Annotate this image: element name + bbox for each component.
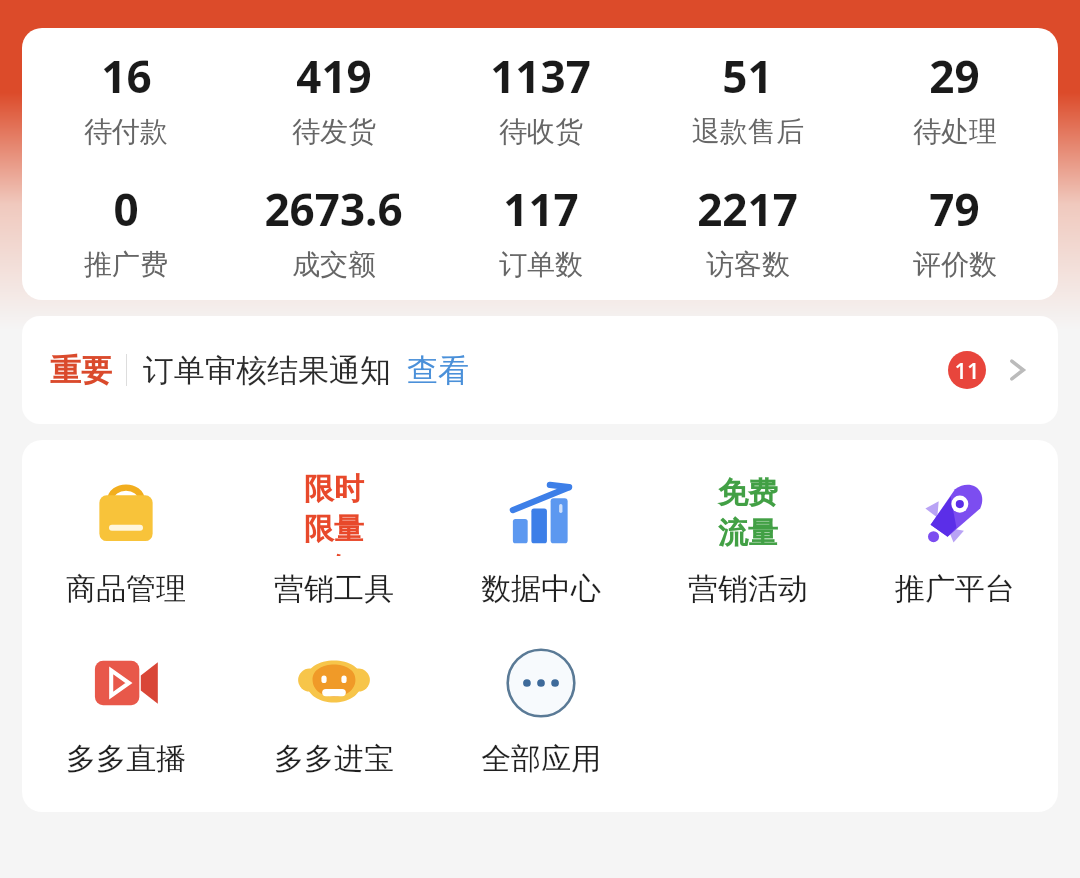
staticText: 419 bbox=[296, 46, 372, 106]
staticText: 限时 bbox=[304, 470, 364, 508]
staticText: 评价数 bbox=[913, 247, 997, 282]
staticText: 营销活动 bbox=[688, 570, 808, 608]
staticText: 查看 bbox=[407, 351, 469, 390]
staticText: 16 bbox=[101, 46, 152, 106]
staticText: 2673.6 bbox=[264, 179, 403, 239]
staticText: 数据中心 bbox=[481, 570, 601, 608]
button[interactable]: 16 bbox=[22, 46, 230, 149]
staticText: 重要 bbox=[50, 351, 112, 390]
staticText: 免费 bbox=[718, 474, 778, 512]
button[interactable]: 数据中心 bbox=[437, 470, 644, 608]
staticText: 待发货 bbox=[292, 114, 376, 149]
staticText: 11 bbox=[954, 355, 980, 385]
staticText: 117 bbox=[503, 179, 579, 239]
staticText: 退款售后 bbox=[692, 114, 804, 149]
button[interactable]: 1137 bbox=[437, 46, 644, 149]
button[interactable]: 2217 bbox=[644, 179, 851, 282]
button[interactable]: 重要 bbox=[22, 316, 1058, 424]
button[interactable]: 推广平台 bbox=[851, 470, 1058, 608]
button[interactable]: 29 bbox=[851, 46, 1058, 149]
button[interactable]: 2673.6 bbox=[230, 179, 437, 282]
staticText: 多多进宝 bbox=[274, 740, 394, 778]
staticText: 51 bbox=[722, 46, 773, 106]
staticText: 成交额 bbox=[292, 247, 376, 282]
staticText: 待处理 bbox=[913, 114, 997, 149]
button[interactable]: 多多进宝 bbox=[230, 640, 437, 778]
button[interactable]: 商品管理 bbox=[22, 470, 230, 608]
staticText: 推广费 bbox=[84, 247, 168, 282]
staticText: 多多直播 bbox=[66, 740, 186, 778]
button[interactable]: 51 bbox=[644, 46, 851, 149]
staticText: 限量购 bbox=[291, 510, 377, 556]
staticText: 访客数 bbox=[706, 247, 790, 282]
button[interactable]: 117 bbox=[437, 179, 644, 282]
staticText: 商品管理 bbox=[66, 570, 186, 608]
staticText: 2217 bbox=[697, 179, 798, 239]
button[interactable]: 0 bbox=[22, 179, 230, 282]
staticText: 79 bbox=[929, 179, 980, 239]
staticText: 流量 bbox=[718, 514, 778, 552]
staticText: 营销工具 bbox=[274, 570, 394, 608]
button[interactable]: 多多直播 bbox=[22, 640, 230, 778]
button[interactable]: 全部应用 bbox=[437, 640, 644, 778]
staticText: 待收货 bbox=[499, 114, 583, 149]
staticText: 29 bbox=[929, 46, 980, 106]
button[interactable]: 79 bbox=[851, 179, 1058, 282]
staticText: 订单审核结果通知 bbox=[143, 351, 391, 390]
staticText: 全部应用 bbox=[481, 740, 601, 778]
staticText: 1137 bbox=[490, 46, 591, 106]
staticText: 订单数 bbox=[499, 247, 583, 282]
button[interactable]: 419 bbox=[230, 46, 437, 149]
staticText: 待付款 bbox=[84, 114, 168, 149]
staticText: 推广平台 bbox=[895, 570, 1015, 608]
button[interactable]: 免费 bbox=[644, 470, 851, 608]
staticText: 0 bbox=[113, 179, 139, 239]
button[interactable]: 限时 bbox=[230, 470, 437, 608]
